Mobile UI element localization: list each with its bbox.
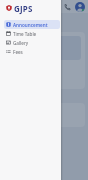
staticText: Time Table: [13, 31, 37, 37]
button[interactable]: Gallery: [4, 38, 60, 47]
button[interactable]: Fees: [4, 47, 60, 56]
button[interactable]: Profile: [75, 2, 85, 12]
button[interactable]: Call: [62, 2, 72, 12]
button[interactable]: [3, 103, 85, 127]
button[interactable]: [3, 32, 85, 89]
button[interactable]: Menu: [4, 2, 13, 11]
staticText: Announcement: [13, 22, 48, 28]
button[interactable]: Time Table: [4, 29, 60, 38]
staticText: Fees: [13, 49, 23, 55]
button[interactable]: Announcement: [4, 20, 60, 29]
staticText: Gallery: [13, 40, 29, 46]
staticText: GJPS: [14, 3, 33, 14]
